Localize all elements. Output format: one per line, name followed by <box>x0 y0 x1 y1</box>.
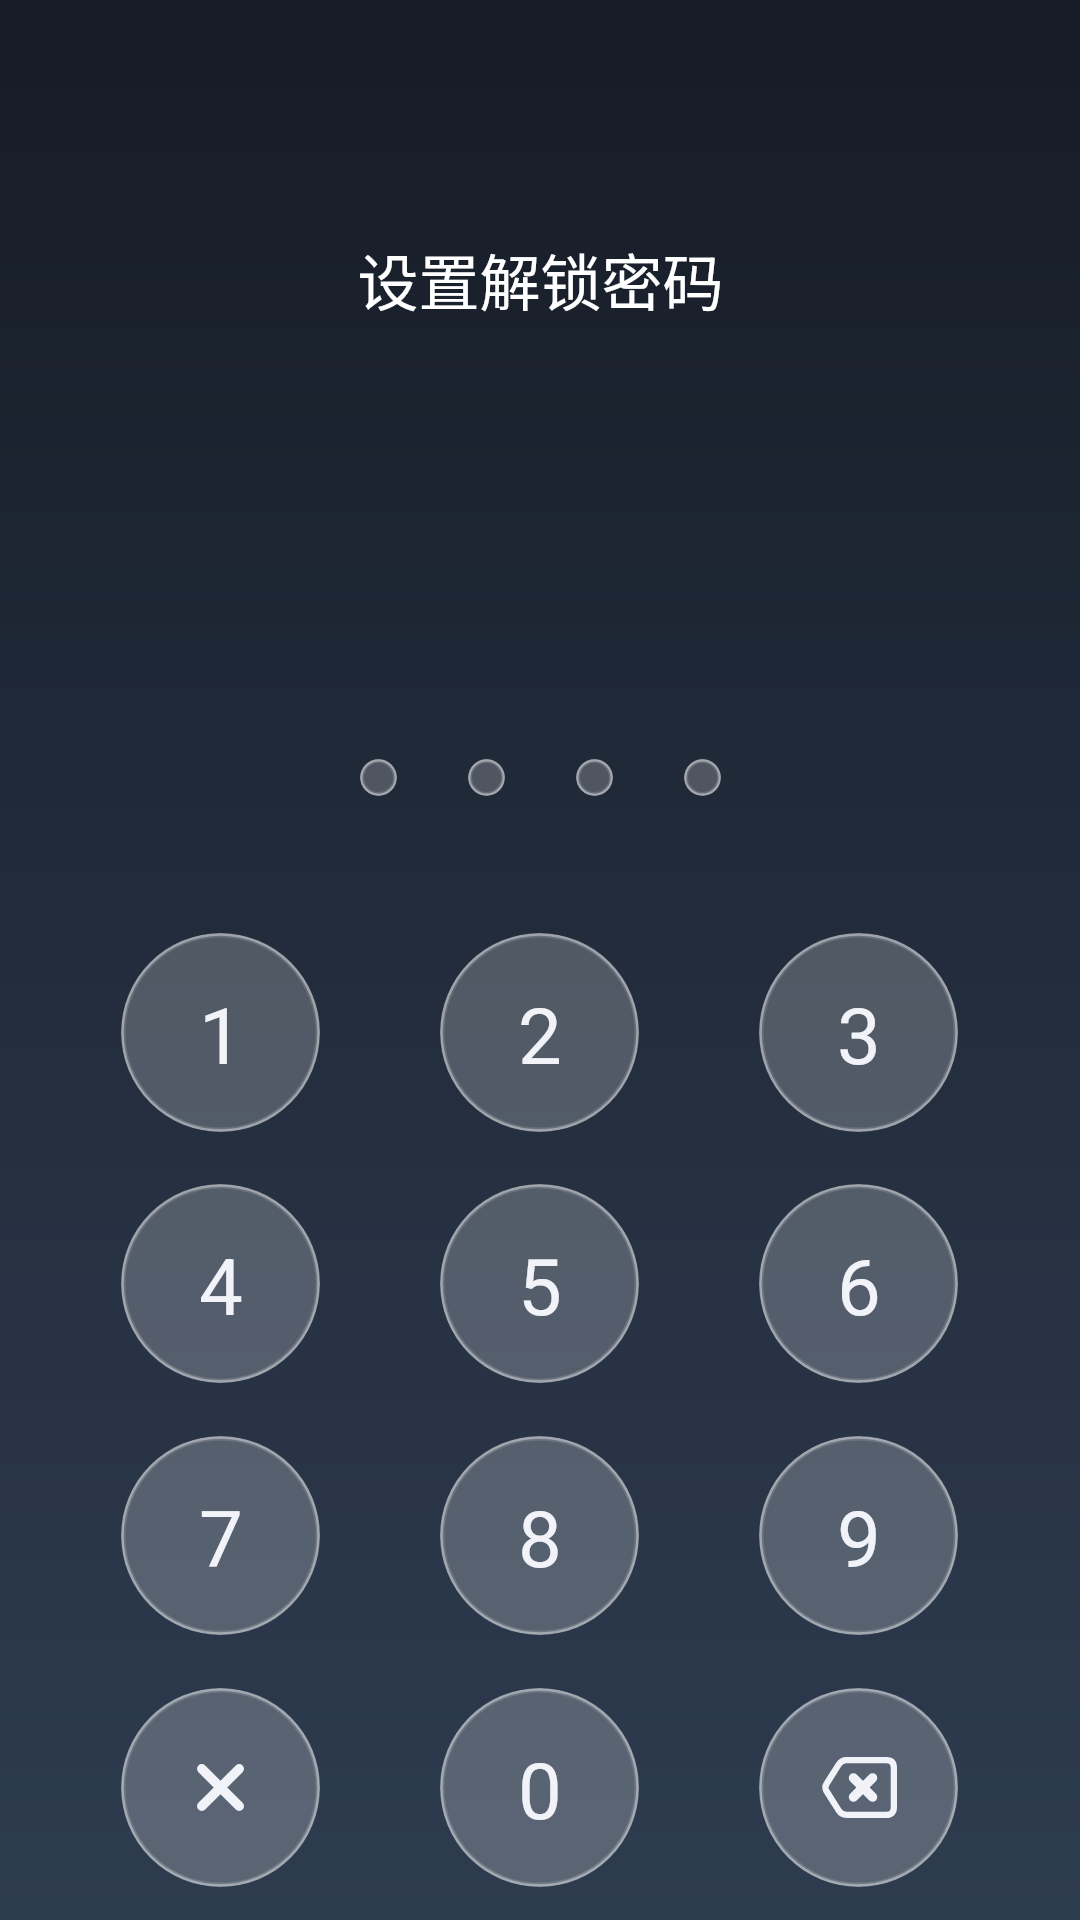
staticText: 0 <box>518 1747 562 1838</box>
staticText: 2 <box>518 992 562 1083</box>
staticText: 设置解锁密码 <box>357 235 724 323</box>
button[interactable]: 3 <box>759 933 958 1132</box>
staticText: 4 <box>199 1243 243 1334</box>
staticText: 6 <box>837 1243 881 1334</box>
button[interactable]: 1 <box>121 933 320 1132</box>
button[interactable]: 9 <box>759 1436 958 1635</box>
staticText: 8 <box>518 1495 562 1586</box>
button[interactable]: 0 <box>440 1688 639 1887</box>
button[interactable]: 7 <box>121 1436 320 1635</box>
button[interactable]: 8 <box>440 1436 639 1635</box>
button[interactable]: Delete <box>759 1688 958 1887</box>
staticText: 3 <box>837 992 881 1083</box>
staticText: 5 <box>518 1243 562 1334</box>
button[interactable]: 5 <box>440 1184 639 1383</box>
staticText: 1 <box>199 992 243 1083</box>
staticText: 9 <box>837 1495 881 1586</box>
staticText: 7 <box>199 1495 243 1586</box>
button[interactable]: 2 <box>440 933 639 1132</box>
button[interactable]: 6 <box>759 1184 958 1383</box>
button[interactable]: Clear <box>121 1688 320 1887</box>
button[interactable]: 4 <box>121 1184 320 1383</box>
